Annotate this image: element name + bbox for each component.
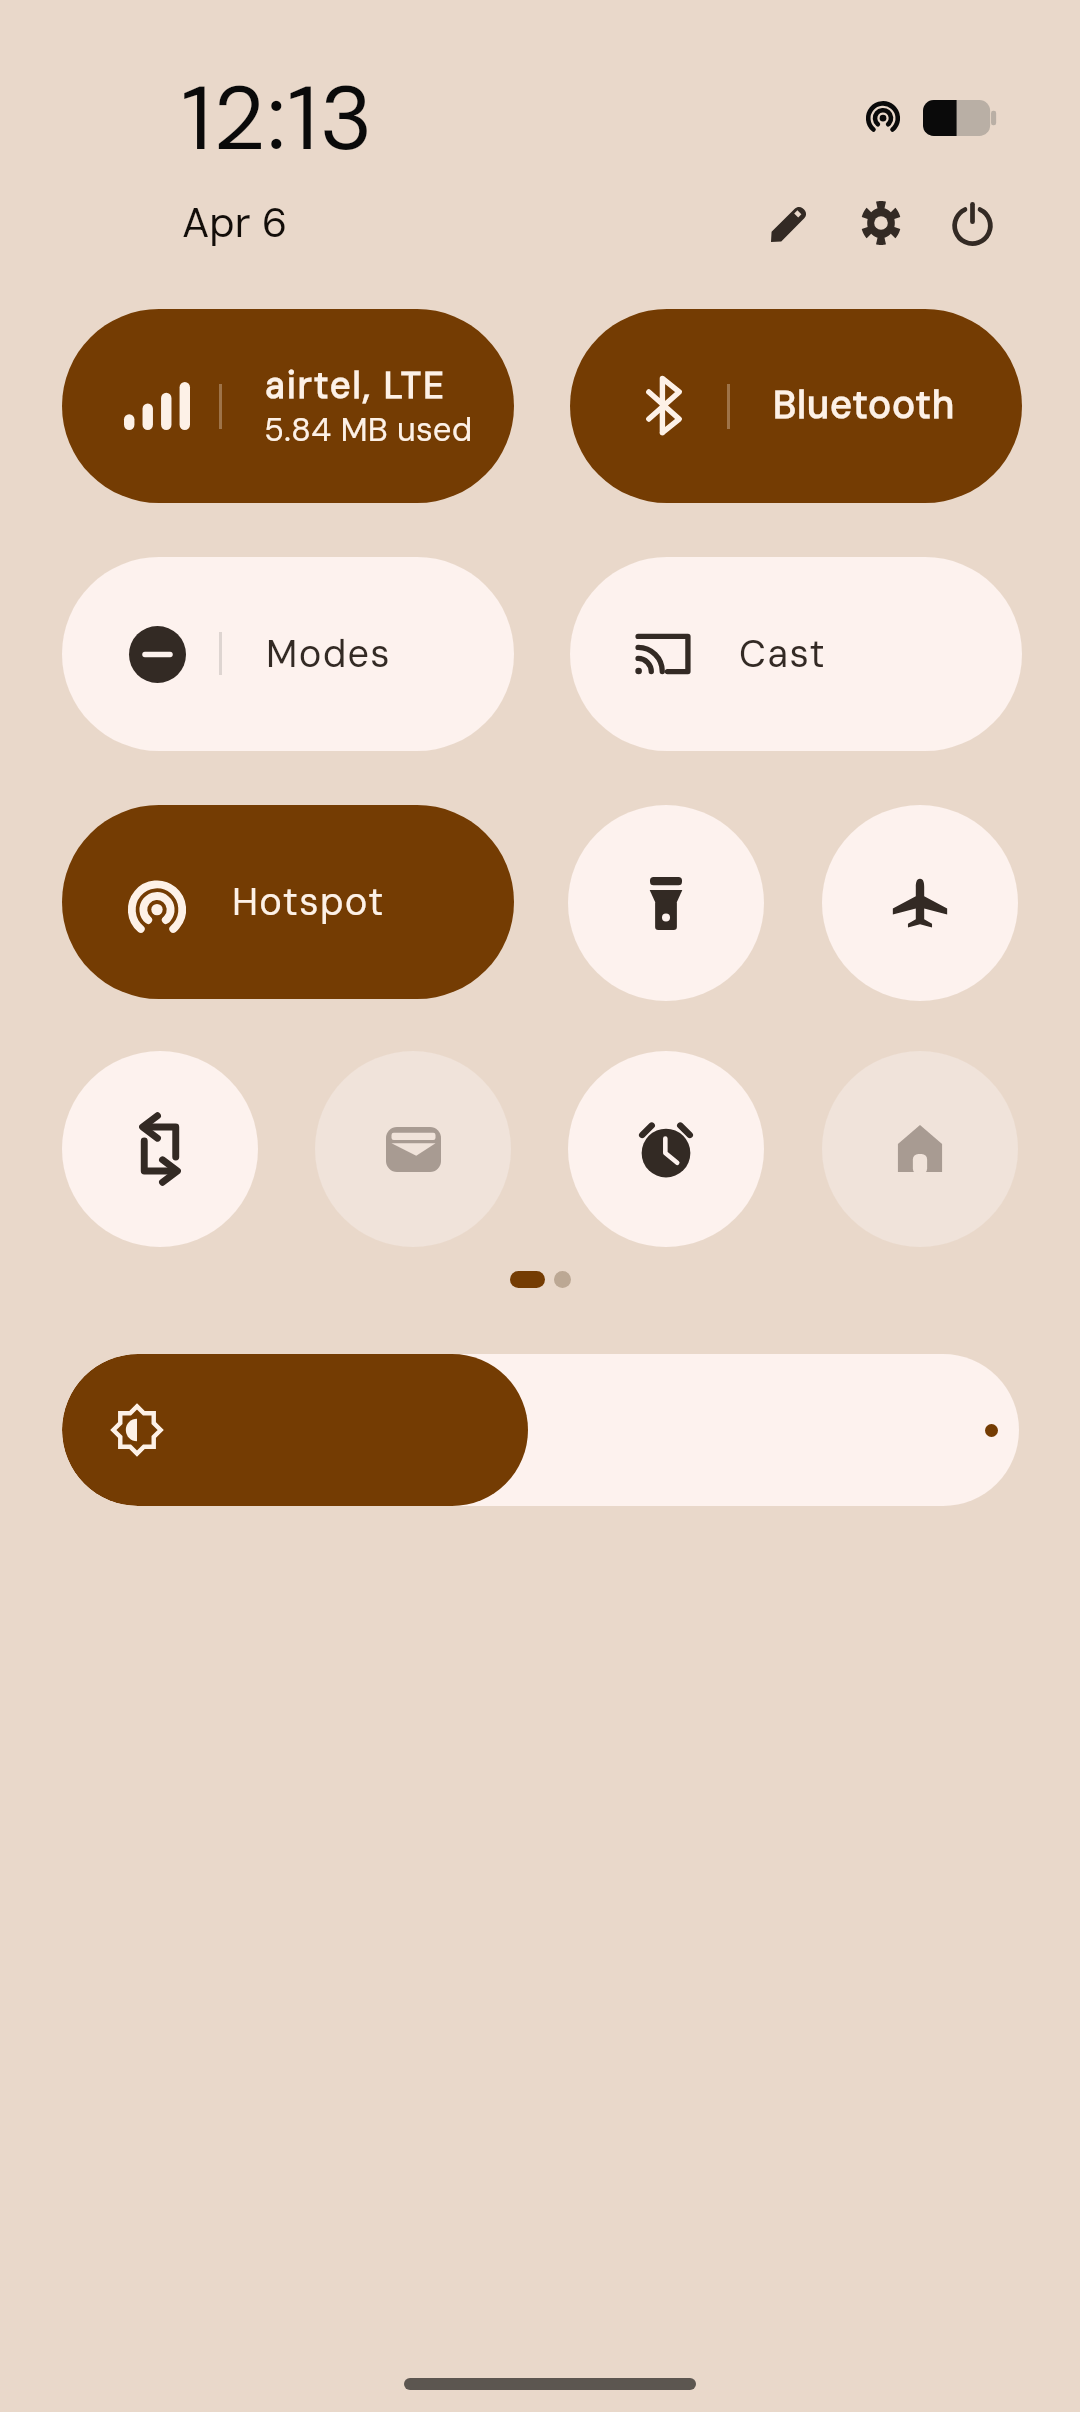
staticText: Apr 6 — [182, 196, 288, 249]
button[interactable]: Cast — [570, 557, 1022, 751]
staticText: 12:13 — [181, 61, 375, 177]
staticText: Cast — [739, 629, 827, 678]
button[interactable]: Wallet — [315, 1051, 511, 1247]
button[interactable]: Hotspot — [62, 805, 514, 999]
button[interactable]: Home — [822, 1051, 1018, 1247]
button[interactable]: Flashlight — [568, 805, 764, 1001]
button[interactable]: Power — [927, 178, 1017, 268]
button[interactable]: Modes — [62, 557, 514, 751]
button[interactable]: Settings — [836, 178, 926, 268]
staticText: Modes — [266, 629, 391, 678]
staticText: 5.84 MB used — [264, 408, 473, 451]
button[interactable]: Bluetooth — [570, 309, 1022, 503]
button[interactable]: Airplane mode — [822, 805, 1018, 1001]
button[interactable]: Page 1 — [510, 1271, 545, 1288]
staticText: Bluetooth — [773, 380, 956, 429]
staticText: Hotspot — [232, 877, 385, 926]
button[interactable]: Alarm — [568, 1051, 764, 1247]
button[interactable]: Page 2 — [554, 1271, 571, 1288]
button[interactable]: Brightness — [62, 1354, 1019, 1506]
button[interactable]: airtel LTE — [62, 309, 514, 503]
button[interactable]: Auto rotate — [62, 1051, 258, 1247]
staticText: airtel, LTE — [265, 362, 446, 409]
button[interactable]: Edit — [745, 178, 835, 268]
